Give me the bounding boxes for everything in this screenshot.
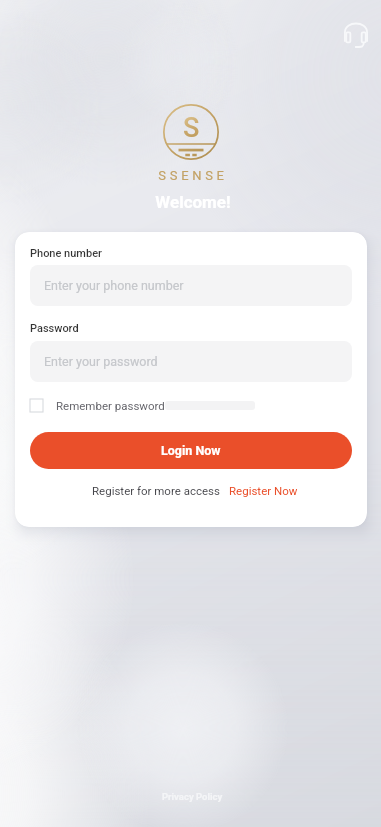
- staticText: Privacy Policy: [162, 791, 223, 802]
- staticText: Phone number: [30, 247, 102, 260]
- staticText: Welcome!: [155, 192, 231, 212]
- button[interactable]: Login Now: [30, 432, 352, 469]
- staticText: Password: [30, 322, 79, 335]
- button[interactable]: Enter your password: [30, 341, 352, 382]
- button[interactable]: Remember password: [30, 399, 165, 412]
- staticText: Enter your phone number: [44, 278, 184, 293]
- staticText: Login Now: [161, 443, 221, 458]
- button[interactable]: Register Now: [229, 484, 298, 497]
- button[interactable]: Privacy Policy: [162, 791, 223, 802]
- staticText: Register Now: [229, 484, 298, 497]
- staticText: Remember password: [56, 399, 165, 412]
- staticText: S: [183, 112, 200, 144]
- button[interactable]: Enter your phone number: [30, 265, 352, 306]
- staticText: Enter your password: [44, 354, 158, 369]
- button[interactable]: Customer support: [343, 21, 368, 49]
- staticText: Register for more access: [92, 484, 220, 497]
- staticText: SSENSE: [158, 168, 228, 183]
